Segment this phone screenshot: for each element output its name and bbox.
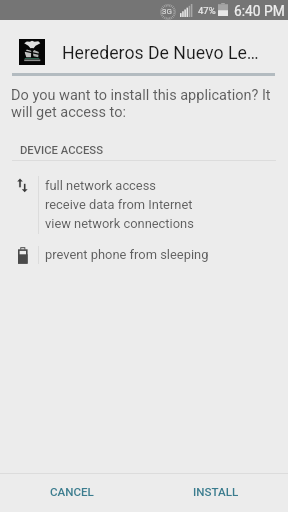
staticText: INSTALL <box>193 485 239 499</box>
staticText: prevent phone from sleeping <box>45 247 209 262</box>
staticText: Herederos De Nuevo Le… <box>62 43 272 64</box>
staticText: full network access receive data from In… <box>45 178 194 231</box>
staticText: 47% <box>198 5 216 16</box>
button[interactable]: CANCEL <box>0 473 144 511</box>
staticText: 6:40 PM <box>234 3 285 19</box>
staticText: CANCEL <box>50 485 94 499</box>
staticText: 3G <box>162 7 172 16</box>
button[interactable]: INSTALL <box>144 473 288 511</box>
staticText: Do you want to install this application?… <box>11 87 271 120</box>
staticText: DEVICE ACCESS <box>20 144 104 157</box>
